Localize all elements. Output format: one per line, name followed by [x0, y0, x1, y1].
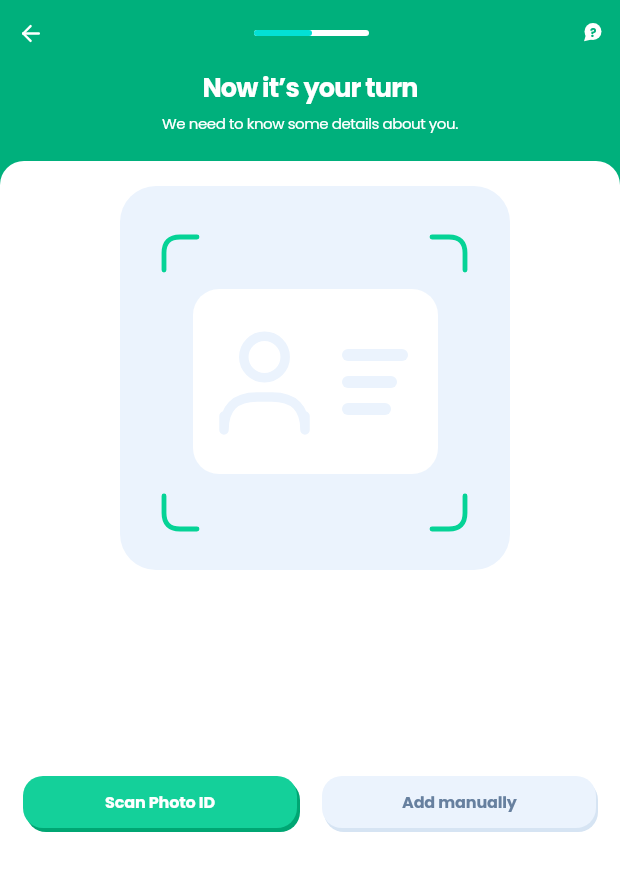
staticText: Now it’s your turn: [202, 70, 418, 106]
staticText: ?: [590, 24, 597, 41]
button[interactable]: Scan Photo ID: [23, 776, 297, 828]
button[interactable]: Help: [571, 10, 615, 54]
staticText: Scan Photo ID: [105, 791, 215, 813]
button[interactable]: Back: [9, 11, 53, 55]
staticText: Add manually: [402, 791, 517, 813]
button[interactable]: Add manually: [322, 776, 596, 828]
staticText: We need to know some details about you.: [162, 113, 458, 134]
